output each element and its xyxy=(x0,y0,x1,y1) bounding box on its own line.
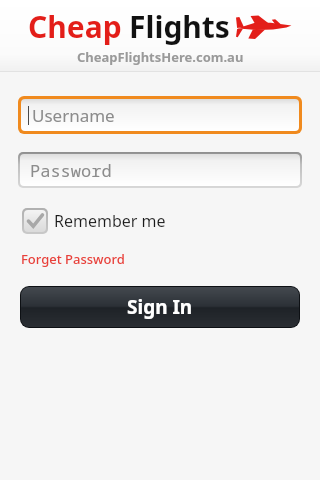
staticText: Username xyxy=(32,104,115,127)
staticText: Flights xyxy=(129,6,230,47)
staticText: Sign In xyxy=(127,294,193,320)
staticText: Cheap xyxy=(28,6,122,47)
button[interactable]: Forget Password xyxy=(21,250,125,268)
button[interactable]: Password xyxy=(18,152,302,188)
other: Remember me checkbox xyxy=(24,210,46,232)
button[interactable]: Username xyxy=(18,96,302,134)
staticText: Forget Password xyxy=(21,250,125,268)
staticText: Password xyxy=(30,159,112,182)
other: Jet airplane logo xyxy=(236,15,292,41)
staticText: CheapFlightsHere.com.au xyxy=(77,48,244,66)
staticText: Remember me xyxy=(54,210,166,232)
button[interactable]: Remember me checkbox xyxy=(22,208,166,234)
button[interactable]: Sign In xyxy=(20,286,300,328)
